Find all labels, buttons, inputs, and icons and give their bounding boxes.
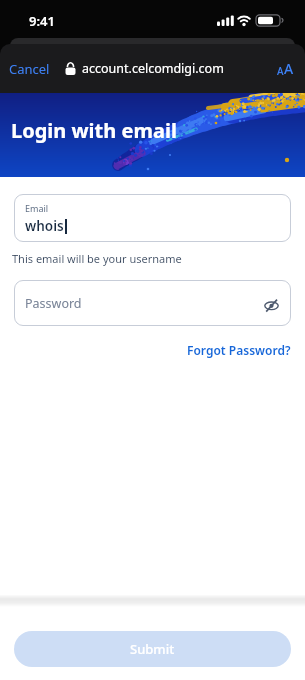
button[interactable]: Password <box>14 280 291 326</box>
staticText: Email <box>25 202 49 214</box>
staticText: Forgot Password? <box>187 342 291 358</box>
staticText: 9:41 <box>29 12 55 30</box>
staticText: whois <box>25 217 64 235</box>
staticText: account.celcomdigi.com <box>82 60 224 77</box>
button[interactable]: account.celcomdigi.com <box>65 60 224 77</box>
staticText: A <box>277 64 284 78</box>
button[interactable]: Submit <box>14 631 291 667</box>
button[interactable]: Forgot Password? <box>182 337 296 363</box>
button[interactable]: Email <box>14 194 291 242</box>
staticText: Cancel <box>9 60 50 78</box>
staticText: Password <box>25 295 82 312</box>
button[interactable]: A <box>272 59 299 78</box>
staticText: This email will be your username <box>12 251 182 266</box>
staticText: Submit <box>130 640 175 658</box>
button[interactable]: Cancel <box>4 54 55 84</box>
staticText: A <box>284 59 294 78</box>
staticText: Login with email <box>11 117 177 144</box>
